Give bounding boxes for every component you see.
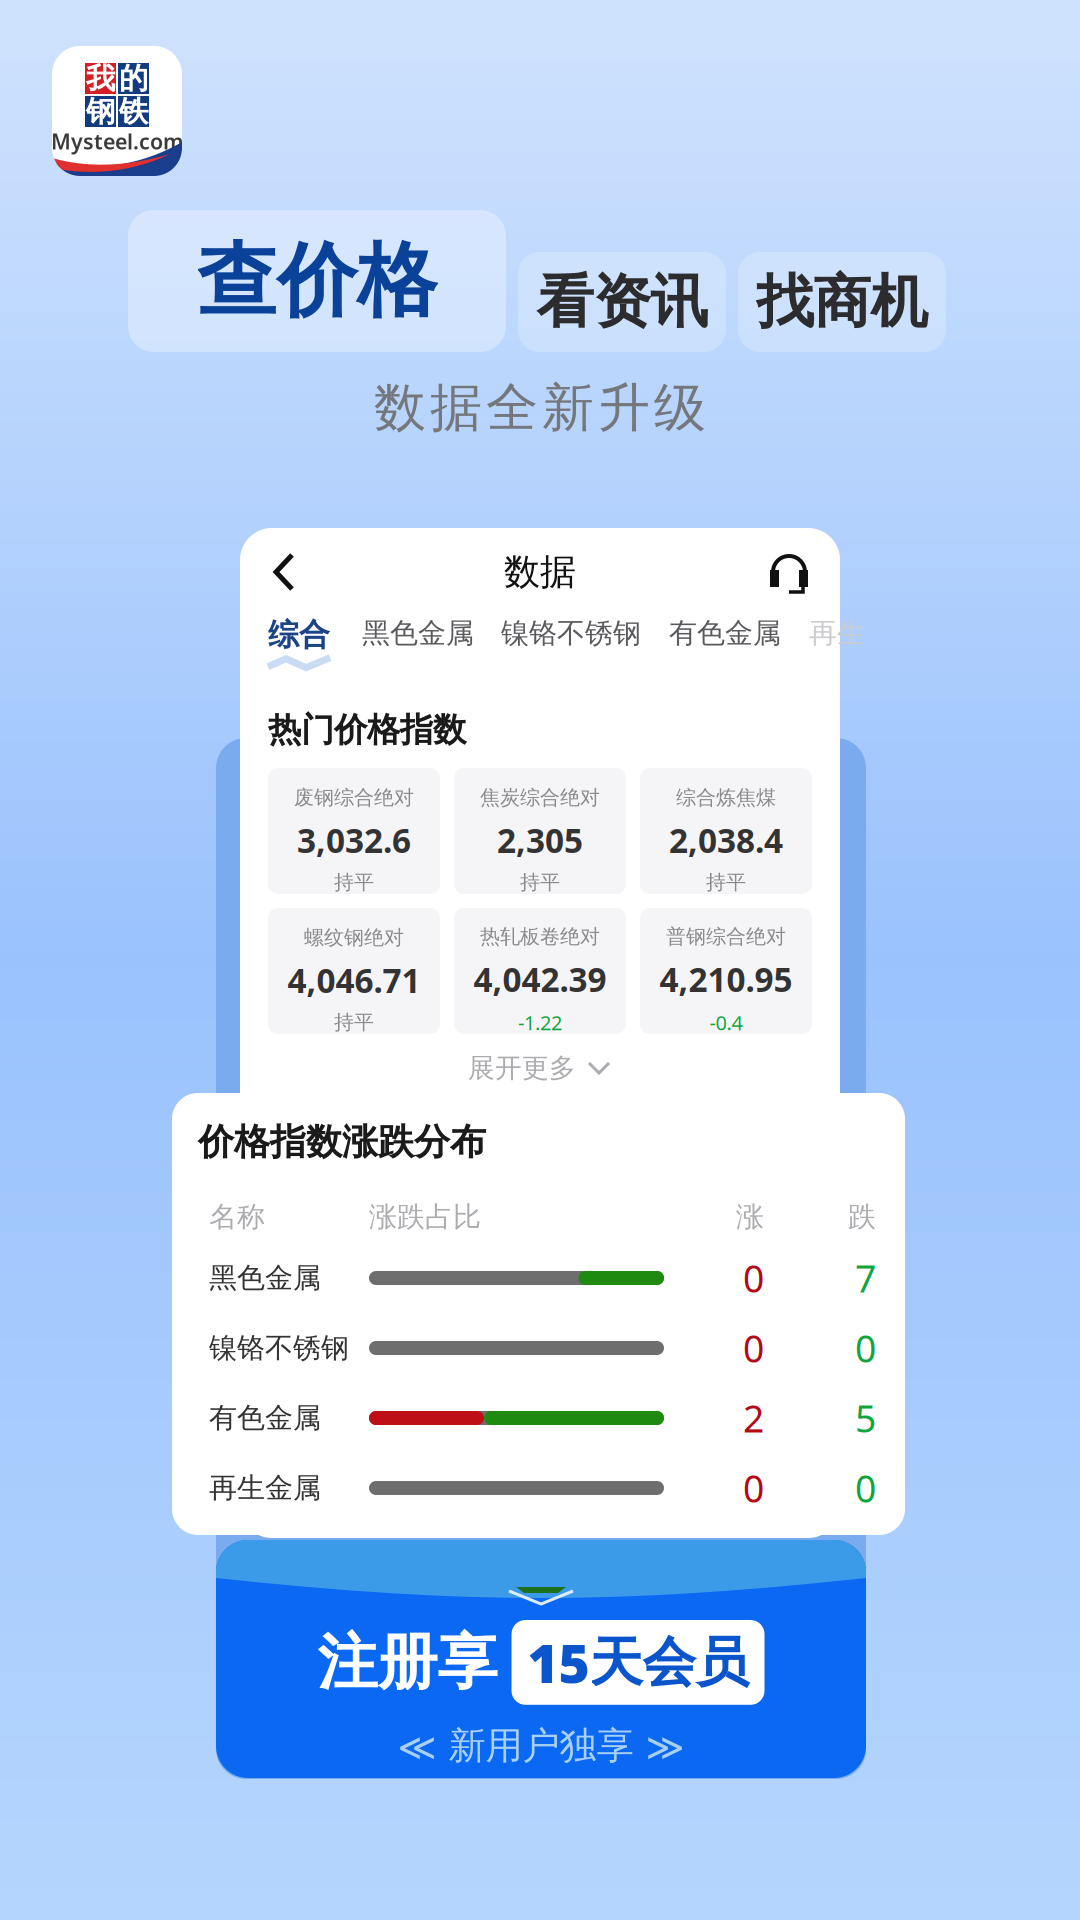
staticText: 再生 [809,616,865,650]
staticText: 螺纹钢绝对 [304,925,404,950]
staticText: 4,210.95 [659,957,792,1001]
staticText: -0.4 [709,1009,742,1036]
staticText: 4,046.71 [287,958,420,1002]
staticText: 有色金属 [209,1401,321,1435]
staticText: 持平 [706,870,746,895]
staticText: 查价格 [197,232,437,330]
staticText: 的 [119,60,148,96]
staticText: 找商机 [756,267,927,337]
staticText: 黑色金属 [209,1261,321,1295]
staticText: 注册享 [317,1626,497,1699]
staticText: 天会员 [589,1630,748,1695]
staticText: 综合炼焦煤 [676,785,776,810]
staticText: 3,032.6 [297,818,411,862]
staticText: 涨 [736,1200,764,1234]
button[interactable]: Back [270,551,298,593]
staticText: 综合 [268,616,330,654]
staticText: 我 [86,60,115,96]
staticText: 数据全新升级 [374,376,706,440]
staticText: ≪ 新用户独享 ≫ [397,1723,684,1769]
button[interactable]: 查价格 [128,210,506,352]
staticText: 15 [527,1627,589,1698]
staticText: 展开更多 [468,1052,576,1084]
staticText: 5 [855,1393,876,1443]
staticText: 名称 [209,1200,265,1234]
staticText: 镍铬不锈钢 [501,616,641,650]
staticText: 0 [743,1323,764,1373]
staticText: Mysteel.com [51,127,183,155]
staticText: 0 [855,1323,876,1373]
staticText: 0 [855,1463,876,1513]
staticText: 持平 [334,1010,374,1035]
staticText: 热轧板卷绝对 [480,924,600,949]
staticText: 价格指数涨跌分布 [198,1120,486,1164]
staticText: 2,038.4 [669,818,783,862]
staticText: 0 [743,1463,764,1513]
staticText: -1.22 [518,1009,562,1036]
staticText: 再生金属 [209,1471,321,1505]
staticText: 4,042.39 [473,957,606,1001]
button[interactable]: Customer support [768,550,810,594]
button[interactable]: 找商机 [738,252,946,352]
staticText: 持平 [334,870,374,895]
staticText: 涨跌占比 [369,1200,481,1234]
button[interactable]: 看资讯 [518,252,726,352]
staticText: 0 [743,1253,764,1303]
staticText: 钢 [86,93,115,129]
staticText: 看资讯 [536,267,707,337]
staticText: 有色金属 [669,616,781,650]
staticText: 普钢综合绝对 [666,924,786,949]
staticText: 数据 [504,550,576,594]
staticText: 热门价格指数 [268,709,466,750]
staticText: 2,305 [497,818,583,862]
staticText: 7 [855,1253,876,1303]
staticText: 持平 [520,870,560,895]
staticText: 废钢综合绝对 [294,785,414,810]
staticText: 2 [743,1393,764,1443]
staticText: 镍铬不锈钢 [209,1331,349,1365]
staticText: 铁 [119,93,148,129]
staticText: 焦炭综合绝对 [480,785,600,810]
staticText: 跌 [848,1200,876,1234]
button[interactable]: 注册享 [216,1540,866,1778]
staticText: 黑色金属 [362,616,474,650]
